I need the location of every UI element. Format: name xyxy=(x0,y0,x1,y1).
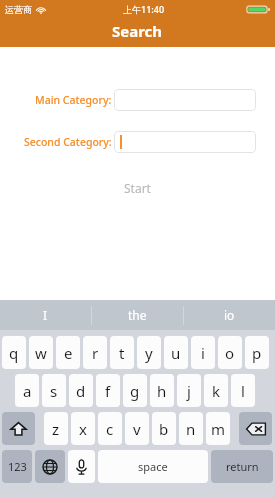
staticText: space xyxy=(138,459,168,474)
button[interactable] xyxy=(114,131,256,153)
staticText: io xyxy=(224,307,235,323)
button[interactable]: h xyxy=(150,374,174,407)
button[interactable]: Start xyxy=(0,175,275,201)
staticText: I xyxy=(43,307,48,323)
button[interactable]: q xyxy=(2,336,26,369)
button[interactable]: Backspace xyxy=(239,412,272,445)
staticText: k xyxy=(212,381,221,401)
staticText: Second Category: xyxy=(24,135,112,149)
staticText: y xyxy=(145,343,153,363)
staticText: c xyxy=(106,419,114,439)
button[interactable]: io xyxy=(184,300,275,330)
button[interactable]: u xyxy=(164,336,188,369)
button[interactable]: w xyxy=(29,336,53,369)
staticText: l xyxy=(241,381,245,401)
staticText: p xyxy=(252,343,262,363)
button[interactable]: l xyxy=(231,374,255,407)
button[interactable]: f xyxy=(96,374,120,407)
button[interactable]: d xyxy=(69,374,93,407)
staticText: x xyxy=(79,419,87,439)
button[interactable]: g xyxy=(123,374,147,407)
staticText: r xyxy=(92,343,99,363)
button[interactable]: x xyxy=(71,412,95,445)
button[interactable]: y xyxy=(137,336,161,369)
staticText: e xyxy=(64,343,73,363)
button[interactable]: z xyxy=(44,412,68,445)
button[interactable]: Next keyboard xyxy=(35,450,65,483)
button[interactable]: 123 xyxy=(2,450,32,483)
staticText: return xyxy=(226,459,259,474)
staticText: q xyxy=(9,343,19,363)
button[interactable]: t xyxy=(110,336,134,369)
staticText: 123 xyxy=(8,459,27,474)
button[interactable]: k xyxy=(204,374,228,407)
staticText: b xyxy=(159,419,169,439)
staticText: s xyxy=(50,381,58,401)
button[interactable]: r xyxy=(83,336,107,369)
button[interactable] xyxy=(114,89,256,111)
button[interactable]: j xyxy=(177,374,201,407)
staticText: Main Category: xyxy=(35,93,112,107)
button[interactable]: o xyxy=(218,336,242,369)
staticText: j xyxy=(187,381,191,401)
button[interactable]: Shift xyxy=(2,412,35,445)
button[interactable]: Dictation xyxy=(68,450,95,483)
button[interactable]: c xyxy=(98,412,122,445)
button[interactable]: return xyxy=(211,450,273,483)
staticText: v xyxy=(133,419,141,439)
staticText: 上午11:40 xyxy=(123,3,165,15)
button[interactable]: m xyxy=(206,412,230,445)
staticText: a xyxy=(23,381,32,401)
button[interactable]: the xyxy=(92,300,183,330)
staticText: o xyxy=(225,343,235,363)
staticText: u xyxy=(171,343,181,363)
staticText: t xyxy=(119,343,125,363)
staticText: m xyxy=(211,419,226,439)
staticText: h xyxy=(157,381,167,401)
button[interactable]: v xyxy=(125,412,149,445)
button[interactable]: p xyxy=(245,336,269,369)
button[interactable]: space xyxy=(98,450,208,483)
staticText: 运营商 xyxy=(5,4,32,15)
staticText: w xyxy=(35,343,47,363)
staticText: f xyxy=(105,381,111,401)
staticText: Start xyxy=(124,180,151,196)
staticText: z xyxy=(52,419,60,439)
button[interactable]: e xyxy=(56,336,80,369)
button[interactable]: n xyxy=(179,412,203,445)
staticText: the xyxy=(128,307,147,323)
button[interactable]: i xyxy=(191,336,215,369)
staticText: n xyxy=(186,419,196,439)
button[interactable]: b xyxy=(152,412,176,445)
button[interactable]: a xyxy=(15,374,39,407)
staticText: d xyxy=(76,381,86,401)
button[interactable]: I xyxy=(0,300,91,330)
staticText: g xyxy=(130,381,140,401)
staticText: i xyxy=(201,343,205,363)
staticText: Search xyxy=(112,21,163,41)
button[interactable]: s xyxy=(42,374,66,407)
